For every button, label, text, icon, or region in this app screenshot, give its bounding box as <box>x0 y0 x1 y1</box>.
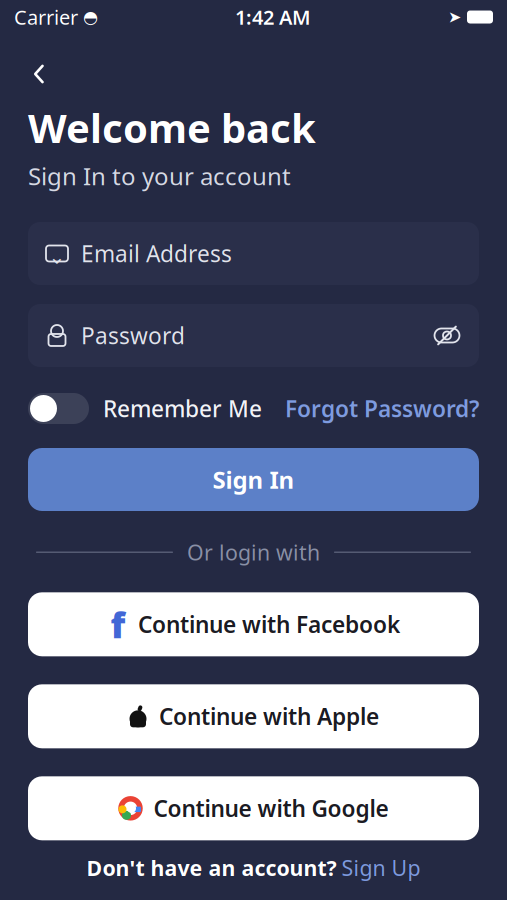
button[interactable]: f <box>28 592 479 656</box>
staticText: Sign In <box>212 464 294 495</box>
staticText: Remember Me <box>103 393 262 423</box>
staticText: Sign Up <box>341 854 420 882</box>
staticText: Welcome back <box>28 101 316 154</box>
staticText: Forgot Password? <box>285 393 479 423</box>
staticText: ⌄ <box>48 245 65 268</box>
staticText: Or login with <box>187 538 320 566</box>
button[interactable]: Show password <box>433 321 461 349</box>
staticText: Password <box>81 320 185 350</box>
staticText: Continue with Facebook <box>138 609 400 639</box>
staticText: Email Address <box>81 238 232 268</box>
button[interactable]: Remember Me <box>28 393 262 424</box>
button[interactable]: Don't have an account? <box>86 854 420 882</box>
staticText: ◓ <box>83 7 98 27</box>
button[interactable]: Continue with Apple <box>28 684 479 748</box>
staticText: ➤ <box>448 8 461 26</box>
staticText: 1:42 AM <box>235 4 311 30</box>
button[interactable]: Back <box>0 57 60 91</box>
staticText: Sign In to your account <box>28 160 291 192</box>
staticText: Don't have an account? <box>86 854 336 882</box>
staticText: Continue with Apple <box>159 701 379 731</box>
button[interactable]: Forgot Password? <box>285 393 479 423</box>
button[interactable]: Sign In <box>28 448 479 511</box>
button[interactable]: Continue with Google <box>28 776 479 840</box>
staticText: Continue with Google <box>153 793 388 823</box>
staticText: f <box>110 600 125 648</box>
staticText: Carrier <box>14 4 78 30</box>
